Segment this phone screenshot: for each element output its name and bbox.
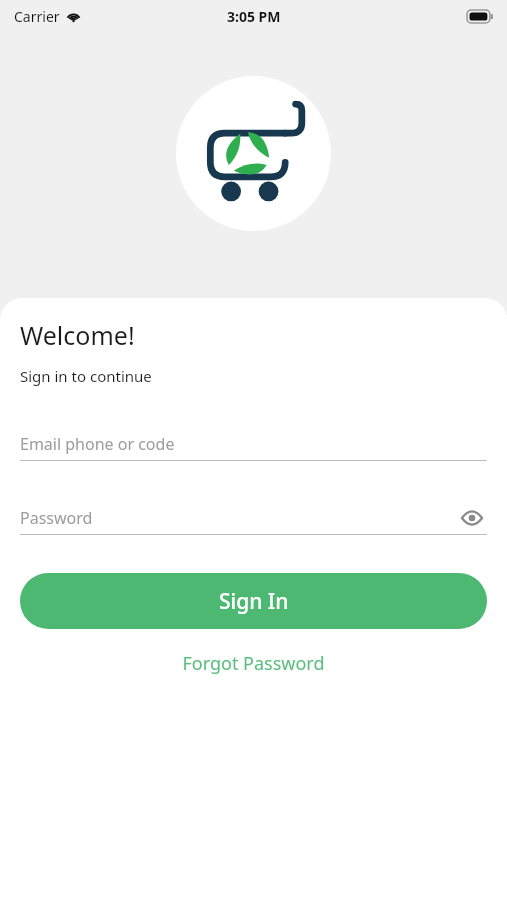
staticText: Password (20, 507, 93, 529)
staticText: Sign in to continue (20, 366, 152, 386)
staticText: Carrier (14, 7, 60, 26)
staticText: 3:05 PM (227, 7, 281, 26)
button[interactable]: Email phone or code (20, 428, 487, 461)
staticText: Forgot Password (182, 651, 325, 676)
button[interactable]: Forgot Password (0, 641, 507, 685)
staticText: Welcome! (20, 318, 135, 352)
staticText: Email phone or code (20, 433, 175, 455)
button[interactable]: Sign In (20, 573, 487, 629)
staticText: Sign In (219, 587, 289, 616)
button[interactable]: Password (20, 502, 487, 535)
button[interactable]: Show password (457, 503, 487, 533)
